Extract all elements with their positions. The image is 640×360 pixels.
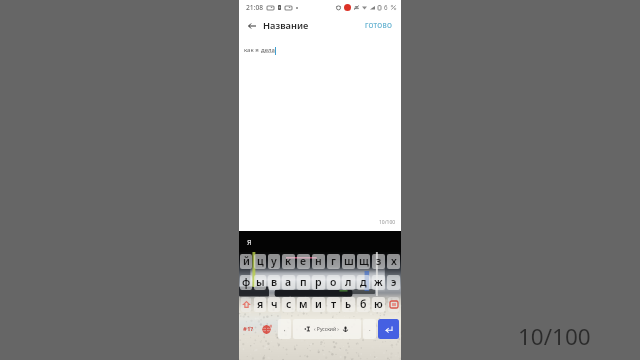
staticText: 10/100 <box>379 219 396 226</box>
button[interactable]: к <box>282 254 295 269</box>
staticText: щ <box>359 254 369 268</box>
staticText: Название <box>263 19 309 32</box>
button[interactable]: и <box>312 297 325 312</box>
staticText: ж <box>374 275 383 289</box>
staticText: х <box>391 254 397 268</box>
button[interactable]: э <box>387 275 400 290</box>
button[interactable]: ф <box>240 275 252 290</box>
button[interactable]: р <box>312 275 325 290</box>
button[interactable]: с <box>282 297 295 312</box>
staticText: л <box>345 275 352 289</box>
button[interactable]: , <box>278 319 291 339</box>
staticText: ю <box>374 297 383 311</box>
button[interactable]: г <box>327 254 340 269</box>
staticText: и <box>315 297 322 311</box>
staticText: #1? <box>243 325 254 333</box>
button[interactable]: з <box>372 254 385 269</box>
staticText: б <box>360 297 367 311</box>
staticText: ц <box>257 254 264 268</box>
button[interactable]: ж <box>372 275 385 290</box>
button[interactable]: х <box>387 254 400 269</box>
button[interactable]: ю <box>372 297 385 312</box>
button[interactable]: ч <box>268 297 280 312</box>
staticText: п <box>300 275 307 289</box>
staticText: р <box>315 275 322 289</box>
button[interactable]: а <box>282 275 295 290</box>
staticText: ь <box>345 297 352 311</box>
button[interactable]: е <box>297 254 310 269</box>
button[interactable]: й <box>240 254 252 269</box>
button[interactable]: Back <box>244 18 259 33</box>
button[interactable]: м <box>297 297 310 312</box>
staticText: в <box>271 275 278 289</box>
staticText: н <box>315 254 322 268</box>
staticText: д <box>360 275 367 289</box>
button[interactable]: в <box>268 275 280 290</box>
button[interactable]: ‹ Русский › <box>293 319 361 339</box>
button[interactable]: #1? <box>239 315 258 343</box>
staticText: 6 <box>384 3 388 11</box>
button[interactable]: ГОТОВО <box>360 16 401 35</box>
staticText: м <box>299 297 308 311</box>
staticText: я <box>247 236 252 247</box>
button[interactable]: Backspace <box>388 297 399 312</box>
button[interactable]: щ <box>357 254 370 269</box>
staticText: 10/100 <box>518 321 591 352</box>
button[interactable]: у <box>268 254 280 269</box>
staticText: ы <box>256 275 265 289</box>
button[interactable]: л <box>342 275 355 290</box>
staticText: а <box>285 275 292 289</box>
button[interactable]: б <box>357 297 370 312</box>
button[interactable]: ы <box>254 275 266 290</box>
staticText: г <box>331 254 336 268</box>
staticText: 21:08 <box>246 3 264 12</box>
staticText: ч <box>271 297 278 311</box>
staticText: ф <box>242 275 251 289</box>
button[interactable]: т <box>327 297 340 312</box>
button[interactable]: д <box>357 275 370 290</box>
staticText: т <box>331 297 337 311</box>
button[interactable]: ш <box>342 254 355 269</box>
staticText: у <box>271 254 277 268</box>
staticText: ГОТОВО <box>365 21 393 30</box>
staticText: к <box>285 254 292 268</box>
button[interactable]: п <box>297 275 310 290</box>
button[interactable]: . <box>363 319 376 339</box>
staticText: . <box>369 325 371 333</box>
button[interactable]: о <box>327 275 340 290</box>
staticText: ш <box>344 254 354 268</box>
staticText: й <box>243 254 250 268</box>
button[interactable]: н <box>312 254 325 269</box>
staticText: , <box>284 325 286 333</box>
staticText: э <box>391 275 397 289</box>
staticText: о <box>330 275 337 289</box>
button[interactable]: Shift <box>241 297 251 312</box>
staticText: е <box>300 254 307 268</box>
button[interactable]: Change language <box>258 315 277 343</box>
staticText: з <box>376 254 382 268</box>
button[interactable]: ь <box>342 297 355 312</box>
button[interactable]: я <box>254 297 266 312</box>
staticText: дела <box>261 46 275 54</box>
staticText: я <box>257 297 264 311</box>
staticText: как я <box>244 46 261 54</box>
button[interactable]: ц <box>254 254 266 269</box>
staticText: с <box>286 297 292 311</box>
staticText: ‹ Русский › <box>314 326 339 333</box>
button[interactable]: Enter <box>378 319 399 339</box>
